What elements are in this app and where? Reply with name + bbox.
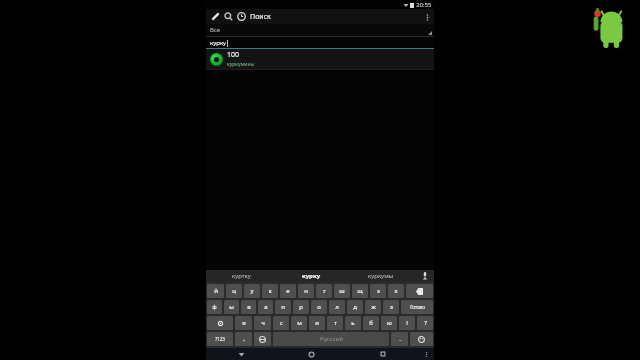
staticText: й <box>214 287 218 295</box>
button[interactable]: ! <box>399 316 415 330</box>
button[interactable]: д <box>347 300 363 314</box>
button[interactable]: More options <box>420 10 434 24</box>
button[interactable]: б <box>363 316 379 330</box>
staticText: л <box>335 303 339 311</box>
button[interactable]: л <box>329 300 345 314</box>
button[interactable]: Recents <box>347 348 418 360</box>
button[interactable]: с <box>273 316 289 330</box>
staticText: Русский <box>320 335 343 343</box>
button[interactable]: е <box>280 284 296 298</box>
button[interactable]: п <box>275 300 291 314</box>
button[interactable]: ч <box>254 316 271 330</box>
button[interactable]: Русский <box>273 332 389 346</box>
staticText: ? <box>424 319 427 327</box>
button[interactable]: к <box>262 284 278 298</box>
button[interactable]: куртку <box>206 270 276 282</box>
button[interactable]: ю <box>381 316 397 330</box>
staticText: к <box>268 287 272 295</box>
button[interactable]: Menu <box>418 348 434 360</box>
staticText: я <box>242 319 246 327</box>
staticText: , <box>243 335 245 343</box>
staticText: курку <box>302 272 321 280</box>
staticText: щ <box>357 287 363 295</box>
staticText: а <box>264 303 268 311</box>
button[interactable]: й <box>207 284 224 298</box>
button[interactable]: н <box>298 284 314 298</box>
button[interactable]: Search <box>222 10 235 23</box>
button[interactable]: куркумы <box>346 270 416 282</box>
button[interactable]: . <box>391 332 408 346</box>
button[interactable]: ы <box>224 300 239 314</box>
staticText: д <box>353 303 357 311</box>
button[interactable]: м <box>291 316 307 330</box>
button[interactable]: Все <box>206 24 434 36</box>
button[interactable]: shift <box>207 316 233 330</box>
button[interactable]: History <box>235 10 248 23</box>
button[interactable]: о <box>311 300 327 314</box>
staticText: х <box>394 287 398 295</box>
staticText: н <box>304 287 308 295</box>
staticText: э <box>390 303 393 311</box>
button[interactable]: Compose <box>209 10 222 23</box>
button[interactable]: ш <box>334 284 350 298</box>
staticText: Готово <box>410 304 425 310</box>
staticText: у <box>250 287 254 295</box>
staticText: и <box>315 319 319 327</box>
button[interactable]: я <box>235 316 252 330</box>
button[interactable]: emoji <box>410 332 433 346</box>
button[interactable]: х <box>388 284 404 298</box>
staticText: г <box>323 287 326 295</box>
button[interactable]: г <box>316 284 332 298</box>
button[interactable]: Voice input <box>416 270 434 282</box>
staticText: курку <box>210 39 227 47</box>
button[interactable]: т <box>327 316 343 330</box>
button[interactable]: ь <box>345 316 361 330</box>
staticText: ю <box>387 319 392 327</box>
staticText: ! <box>406 319 408 327</box>
staticText: ж <box>371 303 376 311</box>
staticText: б <box>369 319 373 327</box>
staticText: Поиск <box>250 12 271 22</box>
staticText: ч <box>261 319 265 327</box>
staticText: ц <box>232 287 236 295</box>
button[interactable]: а <box>258 300 273 314</box>
staticText: о <box>317 303 321 311</box>
button[interactable]: Готово <box>401 300 433 314</box>
button[interactable]: ц <box>226 284 242 298</box>
button[interactable]: ж <box>365 300 381 314</box>
staticText: ы <box>229 303 234 311</box>
staticText: з <box>377 287 380 295</box>
button[interactable]: р <box>293 300 309 314</box>
staticText: . <box>399 335 401 343</box>
staticText: 100 <box>227 50 240 60</box>
staticText: куркумины <box>227 61 255 68</box>
button[interactable]: Back <box>206 348 276 360</box>
staticText: с <box>280 319 283 327</box>
button[interactable]: щ <box>352 284 368 298</box>
button[interactable]: , <box>235 332 252 346</box>
staticText: куртку <box>232 272 251 280</box>
button[interactable]: del <box>406 284 433 298</box>
staticText: е <box>286 287 290 295</box>
button[interactable]: Home <box>276 348 347 360</box>
button[interactable]: в <box>241 300 256 314</box>
button[interactable]: ? <box>417 316 433 330</box>
staticText: куркумы <box>368 272 394 280</box>
staticText: в <box>247 303 251 311</box>
button[interactable]: 100 <box>206 49 434 69</box>
button[interactable]: з <box>370 284 386 298</box>
button[interactable]: э <box>383 300 399 314</box>
staticText: р <box>299 303 303 311</box>
button[interactable]: и <box>309 316 325 330</box>
staticText: т <box>334 319 337 327</box>
button[interactable]: globe <box>254 332 271 346</box>
staticText: ?123 <box>215 336 225 342</box>
button[interactable]: курку <box>206 37 434 48</box>
button[interactable]: курку <box>276 270 346 282</box>
button[interactable]: ?123 <box>207 332 233 346</box>
staticText: 20:55 <box>416 1 432 9</box>
staticText: п <box>281 303 285 311</box>
button[interactable]: у <box>244 284 260 298</box>
staticText: ь <box>351 319 355 327</box>
button[interactable]: ф <box>207 300 222 314</box>
